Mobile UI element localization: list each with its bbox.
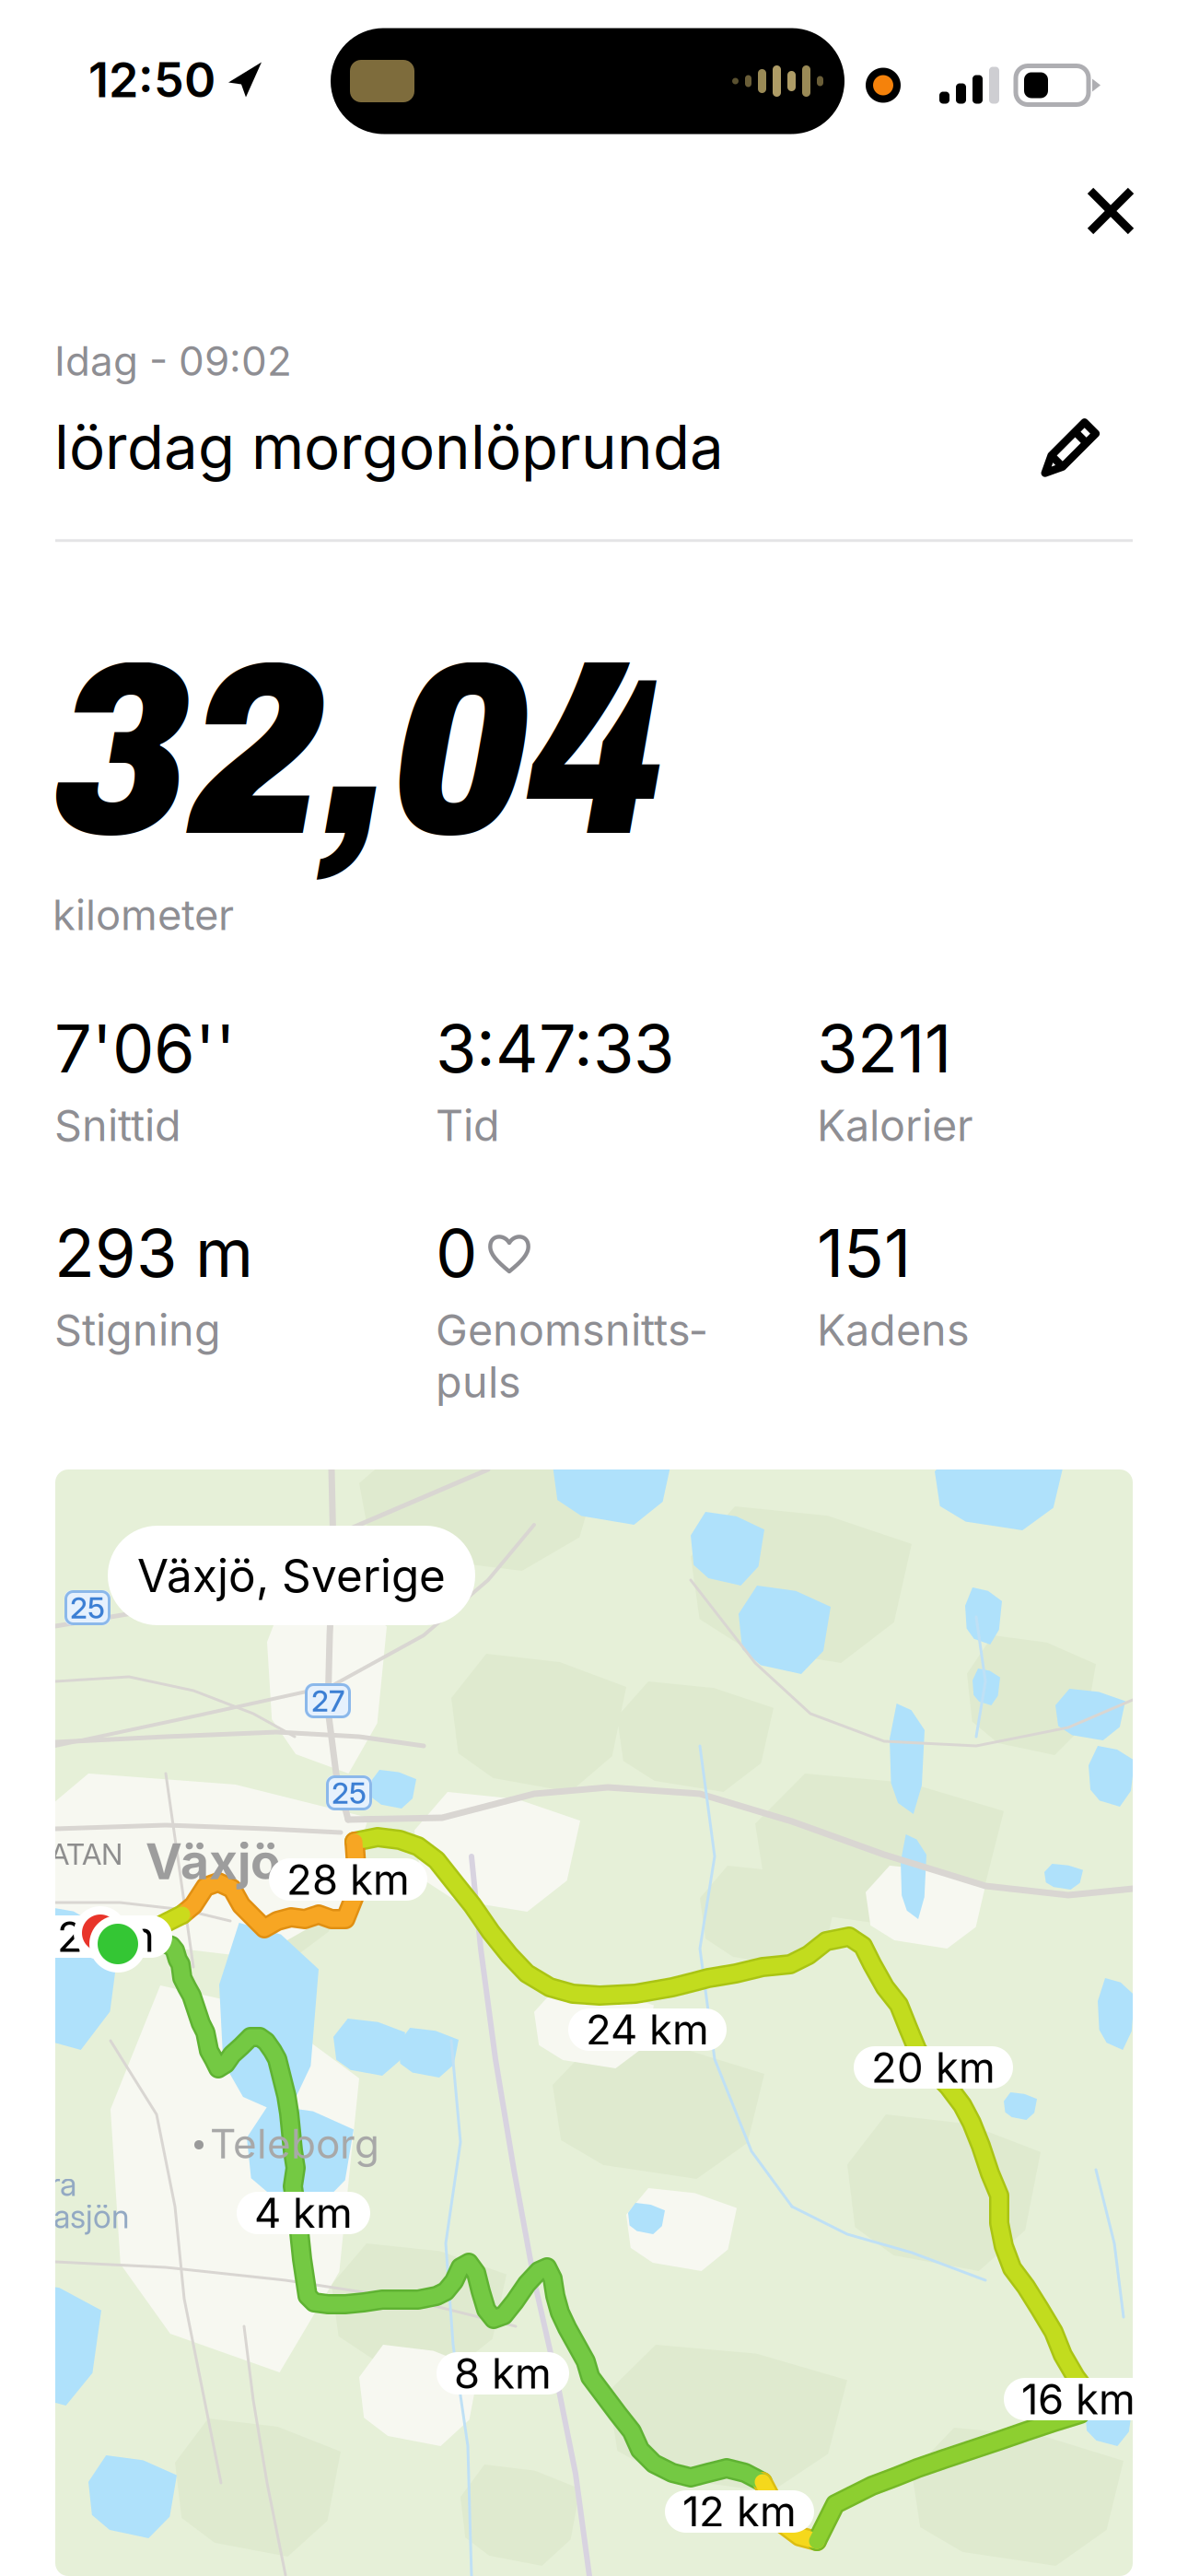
staticText: 25 [332,1775,367,1811]
staticText: 3211 [817,1008,951,1088]
button[interactable]: Edit activity name [1029,405,1134,489]
staticText: 4 km [254,2188,353,2238]
staticText: Genomsnittspuls [436,1304,706,1408]
staticText: 293 m [54,1213,253,1293]
staticText: Stigning [54,1304,221,1356]
staticText: Kadens [817,1304,970,1356]
staticText: 3:47:33 [436,1008,674,1088]
staticText: 25 [70,1590,105,1625]
button[interactable]: Close [1066,167,1155,255]
staticText: Kalorier [817,1099,973,1151]
staticText: Teleborg [210,2119,379,2168]
staticText: 12 km [682,2486,797,2537]
staticText: 24 km [586,2004,709,2055]
staticText: 8 km [454,2348,552,2399]
staticText: 0 [436,1213,477,1293]
staticText: Tid [436,1099,500,1151]
staticText: Snittid [54,1099,181,1151]
staticText: 7'06'' [54,1008,236,1088]
staticText: ATAN [50,1836,122,1872]
staticText: Växjö [146,1832,281,1891]
staticText: lördag morgonlöprunda [54,411,724,483]
staticText: Växjö, Sverige [137,1548,446,1603]
staticText: 12:50 [88,51,215,109]
staticText: kilometer [52,890,234,940]
staticText: 151 [817,1213,911,1293]
staticText: 20 km [871,2042,996,2093]
staticText: 27 [311,1683,344,1719]
staticText: dasjön [35,2197,129,2236]
staticText: 16 km [1021,2374,1136,2424]
staticText: 32 km [31,1911,155,1962]
staticText: ra [50,2165,76,2204]
staticText: Idag - 09:02 [54,336,292,385]
staticText: 32,04 [52,619,663,884]
staticText: 28 km [286,1854,410,1905]
